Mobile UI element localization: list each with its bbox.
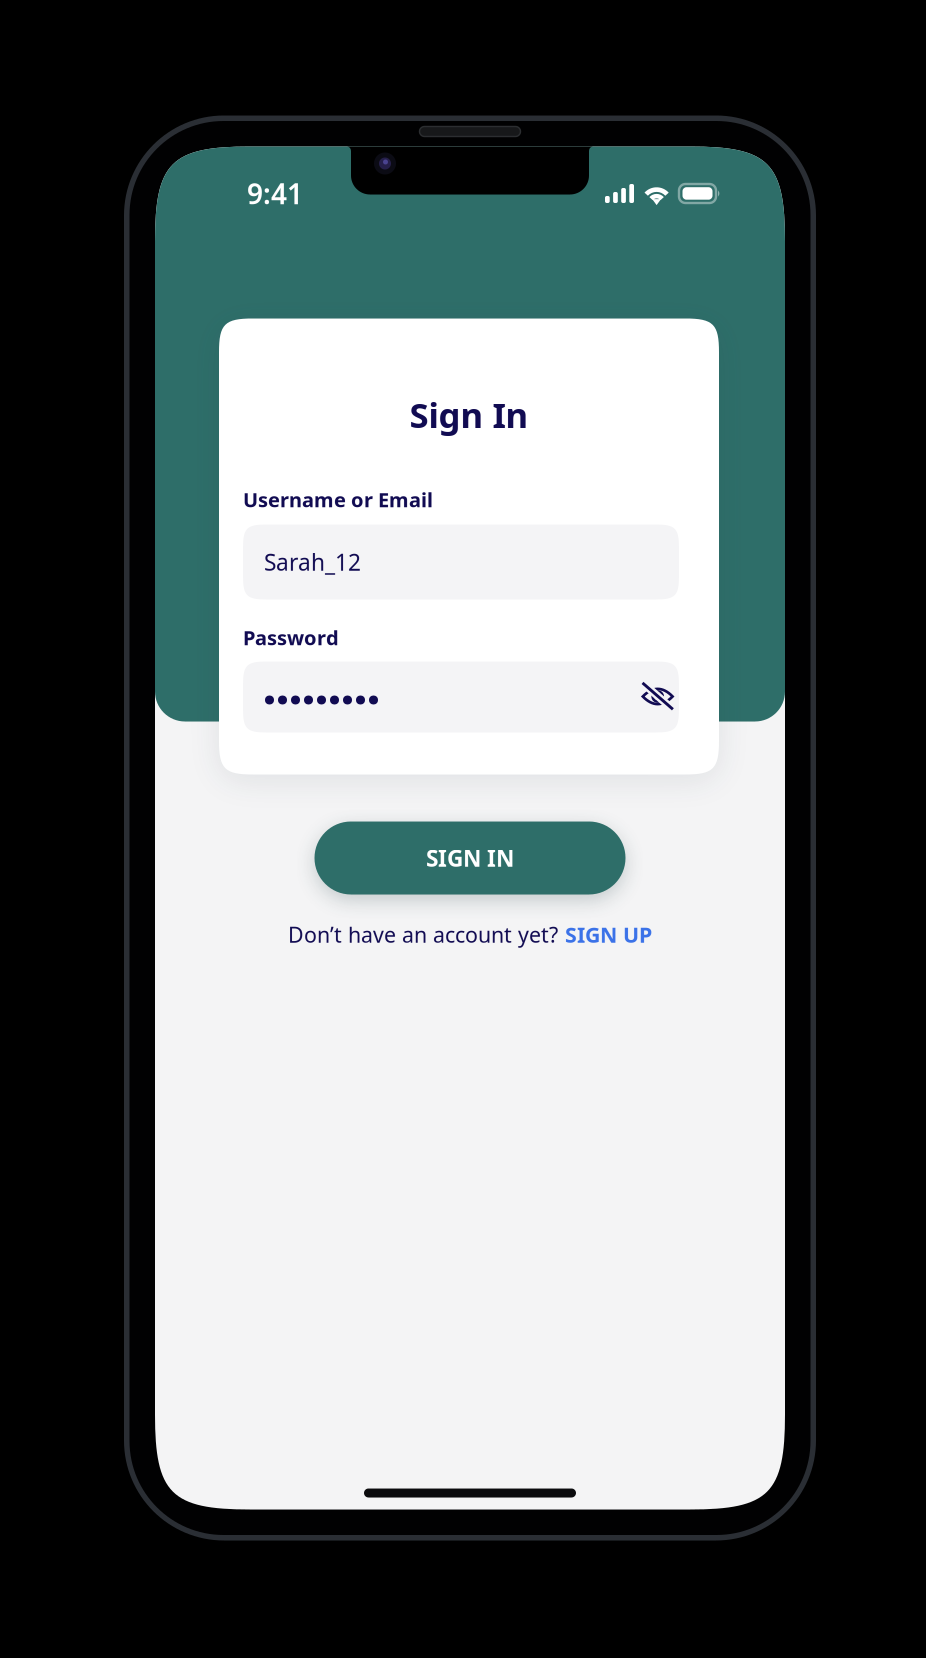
staticText: Don’t have an account yet? — [288, 920, 558, 949]
button[interactable]: Show password — [634, 673, 682, 721]
button[interactable]: SIGN IN — [314, 821, 625, 894]
staticText: Sarah_12 — [264, 547, 361, 577]
staticText: SIGN UP — [565, 920, 652, 949]
staticText: Password — [243, 624, 339, 651]
staticText: 9:41 — [247, 175, 303, 212]
staticText: Username or Email — [243, 486, 433, 513]
button[interactable]: Don’t have an account yet? — [288, 917, 652, 951]
staticText: SIGN IN — [426, 843, 514, 873]
staticText: Sign In — [409, 391, 528, 437]
